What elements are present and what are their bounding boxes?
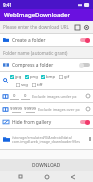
- staticText: 9:41: [3, 2, 12, 8]
- staticText: DOWNLOAD: [32, 162, 61, 169]
- button[interactable]: jpg: [10, 74, 22, 80]
- button[interactable]: Home: [41, 171, 52, 182]
- button[interactable]: bmp: [41, 74, 56, 80]
- button[interactable]: Paste: [74, 24, 81, 31]
- button[interactable]: DOWNLOAD: [0, 159, 93, 171]
- staticText: Exclude images under px: [32, 94, 77, 99]
- button[interactable]: Back: [67, 171, 78, 182]
- staticText: jpg: [15, 74, 22, 80]
- staticText: bmp: [46, 74, 56, 80]
- staticText: Create a folder: [12, 37, 46, 44]
- staticText: 0: [24, 93, 27, 99]
- button[interactable]: Folder name (automatic grant): [0, 47, 93, 58]
- staticText: Compress a folder: [12, 62, 54, 69]
- button[interactable]: Recents: [15, 171, 26, 182]
- button[interactable]: Off: [79, 62, 90, 68]
- staticText: Hide from gallery: [12, 119, 52, 126]
- button[interactable]: Settings: [83, 24, 90, 31]
- staticText: /storage/emulated/0/Android/data/com.img…: [12, 135, 90, 144]
- button[interactable]: png: [25, 74, 38, 80]
- button[interactable]: tiff: [32, 82, 43, 88]
- staticText: 0: [13, 93, 16, 99]
- staticText: png: [30, 74, 38, 80]
- staticText: Exclude images over px: [38, 107, 80, 112]
- staticText: gif: [64, 74, 70, 80]
- button[interactable]: Hide from gallery: [0, 116, 93, 128]
- staticText: Please enter the download URL: [3, 24, 69, 30]
- staticText: 99999: [24, 106, 36, 112]
- button[interactable]: Create a folder: [0, 34, 93, 46]
- button[interactable]: Clear: [85, 106, 91, 112]
- button[interactable]: Compress a folder: [0, 59, 93, 71]
- button[interactable]: /storage/emulated/0/Android/data/com.img…: [0, 129, 93, 149]
- staticText: WebImageDownloader: [4, 11, 71, 19]
- staticText: svg: [21, 82, 28, 88]
- button[interactable]: svg: [16, 82, 28, 88]
- staticText: 99999: [10, 106, 22, 112]
- button[interactable]: Please enter the download URL: [0, 21, 93, 33]
- button[interactable]: Clear: [85, 93, 91, 99]
- button[interactable]: On: [79, 37, 90, 43]
- staticText: tiff: [37, 82, 43, 88]
- staticText: Folder name (automatic grant): [3, 50, 68, 56]
- button[interactable]: On: [79, 119, 90, 125]
- button[interactable]: gif: [59, 74, 70, 80]
